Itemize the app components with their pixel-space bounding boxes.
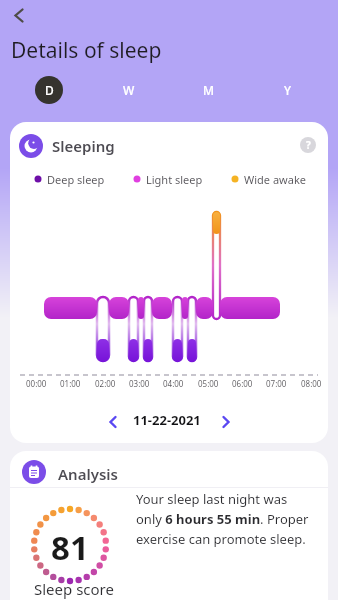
staticText: Sleep score	[34, 579, 114, 599]
button[interactable]	[100, 409, 126, 435]
staticText: 01:00	[60, 378, 81, 389]
staticText: Your sleep last night was only 6 hours 5…	[136, 490, 309, 548]
staticText: Light sleep	[146, 172, 203, 187]
staticText: Analysis	[58, 464, 118, 484]
staticText: Deep sleep	[47, 172, 105, 187]
staticText: Wide awake	[244, 172, 306, 187]
staticText: 04:00	[163, 378, 184, 389]
button[interactable]: Y	[274, 76, 302, 104]
staticText: 06:00	[232, 378, 253, 389]
button[interactable]	[213, 409, 239, 435]
staticText: W	[123, 82, 135, 98]
staticText: 03:00	[129, 378, 150, 389]
staticText: 11-22-2021	[133, 411, 201, 429]
button[interactable]: D	[35, 76, 63, 104]
staticText: Y	[284, 82, 292, 98]
button[interactable]: ?	[300, 137, 316, 153]
staticText: 00:00	[26, 378, 47, 389]
staticText: 05:00	[198, 378, 219, 389]
staticText: 07:00	[266, 378, 287, 389]
staticText: D	[45, 82, 54, 98]
staticText: 02:00	[95, 378, 116, 389]
button[interactable]	[6, 4, 32, 30]
staticText: Sleeping	[52, 136, 115, 156]
staticText: 81	[51, 525, 89, 565]
staticText: ?	[306, 138, 311, 152]
button[interactable]: W	[115, 76, 143, 104]
button[interactable]: M	[195, 76, 223, 104]
staticText: M	[203, 82, 215, 98]
staticText: 08:00	[301, 378, 322, 389]
staticText: Details of sleep	[11, 36, 162, 65]
